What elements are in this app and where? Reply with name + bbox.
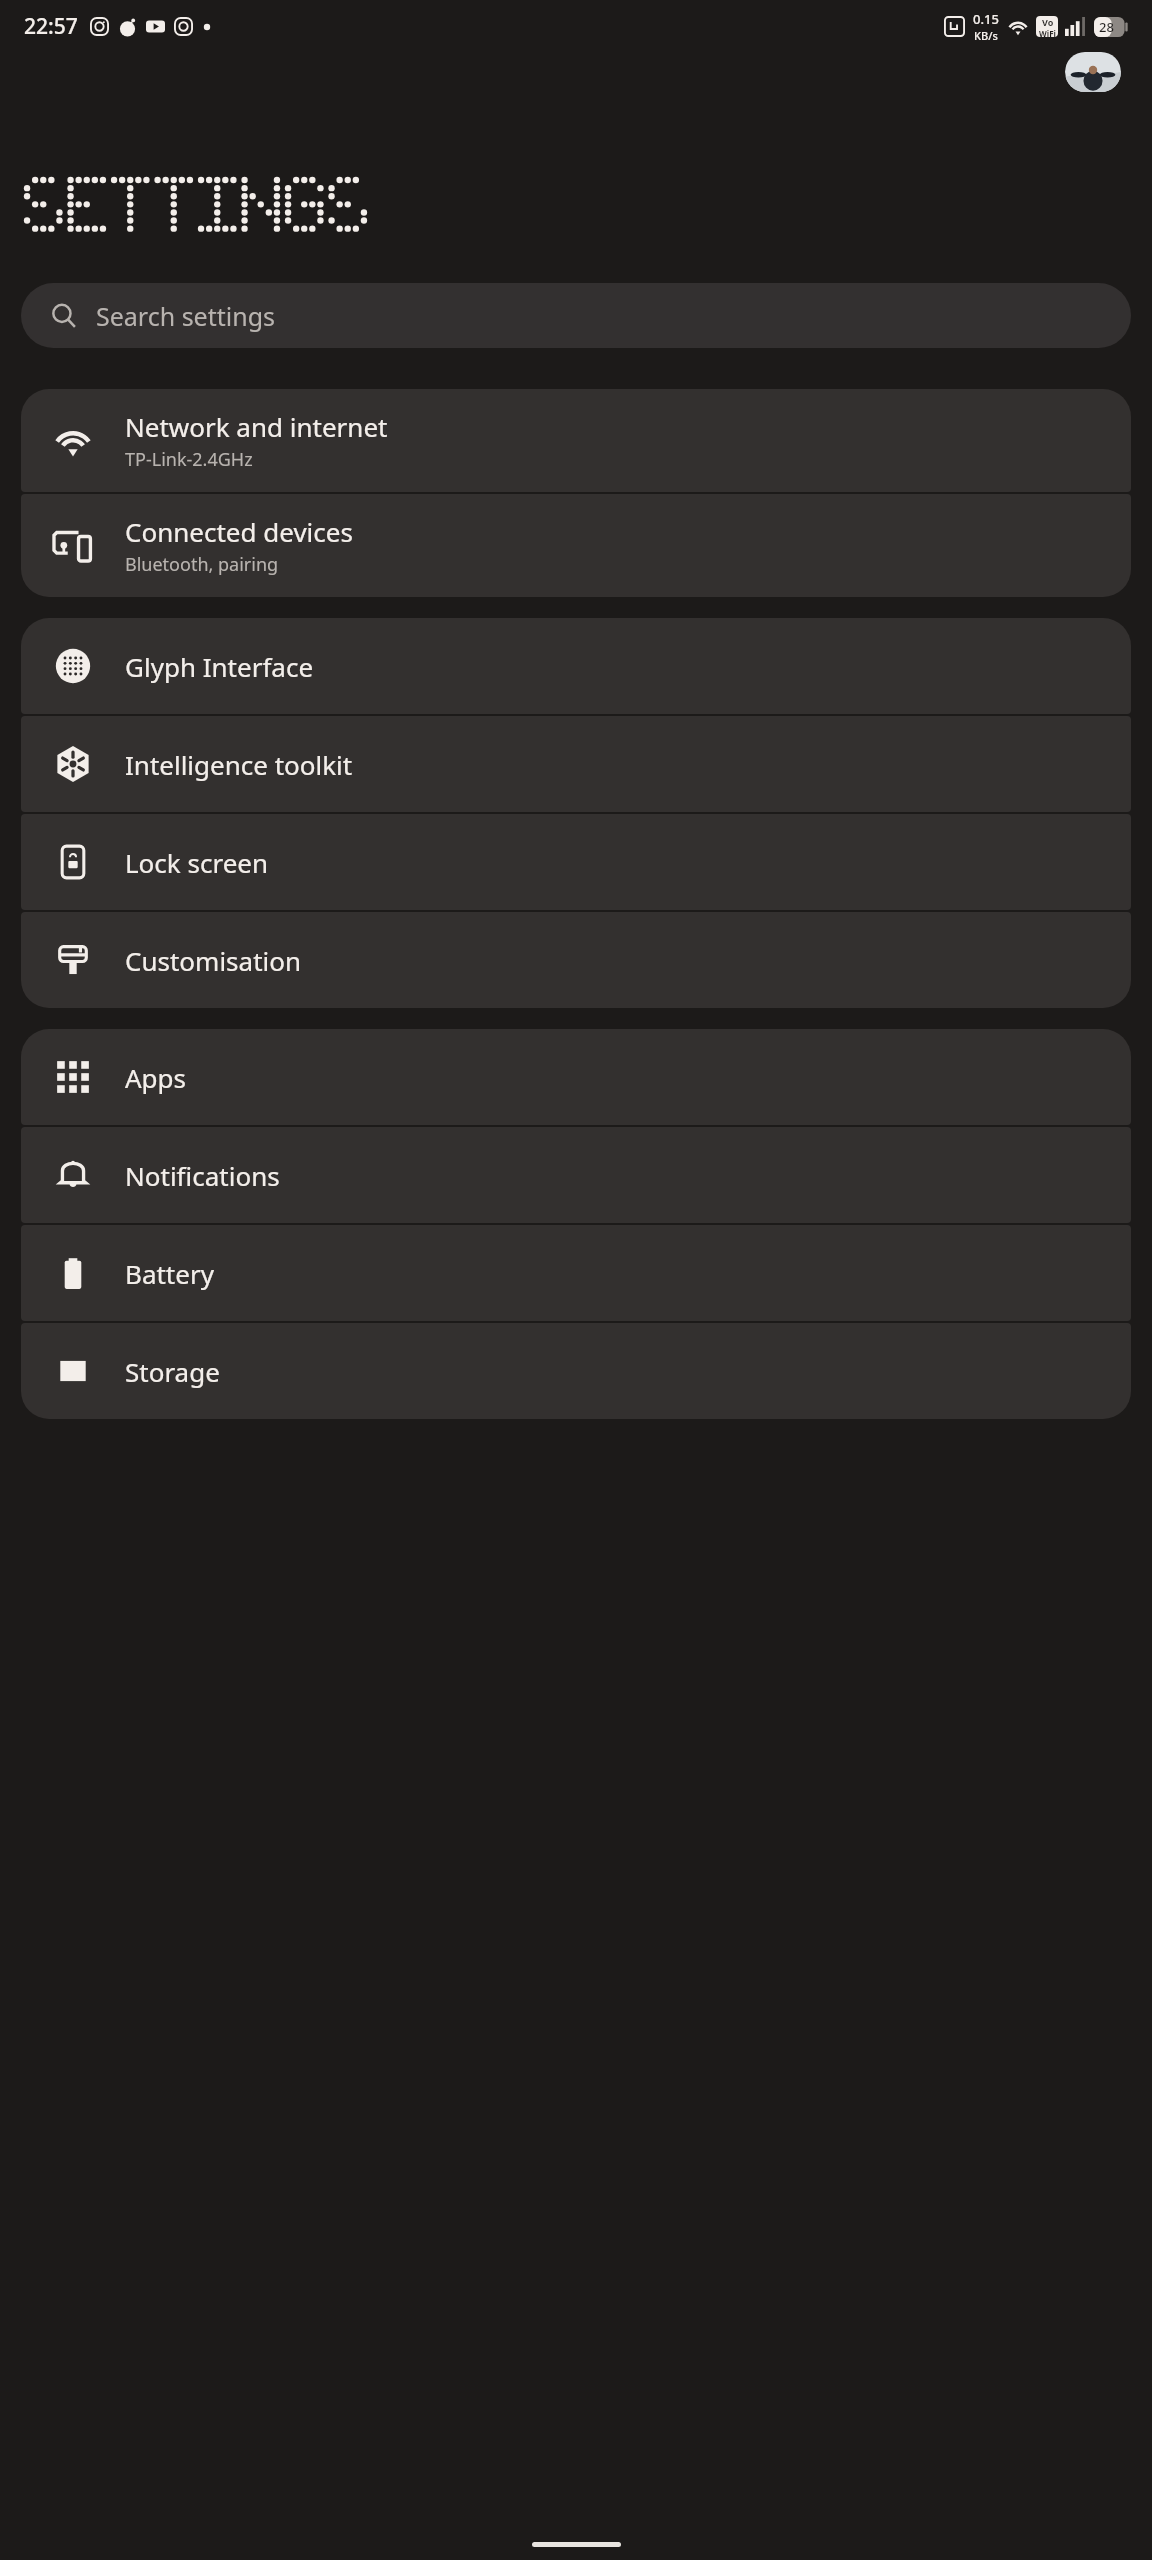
button[interactable]: Apps	[21, 1029, 1131, 1125]
staticText: TP-Link-2.4GHz	[125, 447, 253, 472]
staticText: WiFi	[1039, 28, 1056, 37]
button[interactable]: Notifications	[21, 1127, 1131, 1223]
staticText: Lock screen	[125, 845, 269, 880]
staticText: Battery	[125, 1256, 214, 1291]
staticText: 28	[1099, 18, 1114, 36]
staticText: Notifications	[125, 1158, 280, 1193]
staticText: Network and internet	[125, 409, 388, 444]
button[interactable]: Account	[1065, 52, 1121, 92]
staticText: Bluetooth, pairing	[125, 552, 279, 577]
button[interactable]: Storage	[21, 1323, 1131, 1419]
staticText: 22:57	[24, 12, 78, 41]
button[interactable]: Network and internet	[21, 389, 1131, 492]
staticText: KB/s	[974, 28, 998, 43]
staticText: Storage	[125, 1354, 220, 1389]
staticText: Customisation	[125, 943, 302, 978]
staticText: Vo	[1042, 16, 1054, 28]
button[interactable]: Intelligence toolkit	[21, 716, 1131, 812]
staticText: Search settings	[96, 299, 276, 333]
staticText: Apps	[125, 1060, 187, 1095]
button[interactable]: Glyph Interface	[21, 618, 1131, 714]
staticText: Glyph Interface	[125, 649, 314, 684]
staticText: Intelligence toolkit	[125, 747, 353, 782]
staticText: Connected devices	[125, 514, 353, 549]
button[interactable]: Connected devices	[21, 494, 1131, 597]
button[interactable]: Customisation	[21, 912, 1131, 1008]
staticText: 0.15	[973, 10, 999, 28]
button[interactable]: Search settings	[21, 283, 1131, 348]
button[interactable]: Lock screen	[21, 814, 1131, 910]
button[interactable]: Battery	[21, 1225, 1131, 1321]
